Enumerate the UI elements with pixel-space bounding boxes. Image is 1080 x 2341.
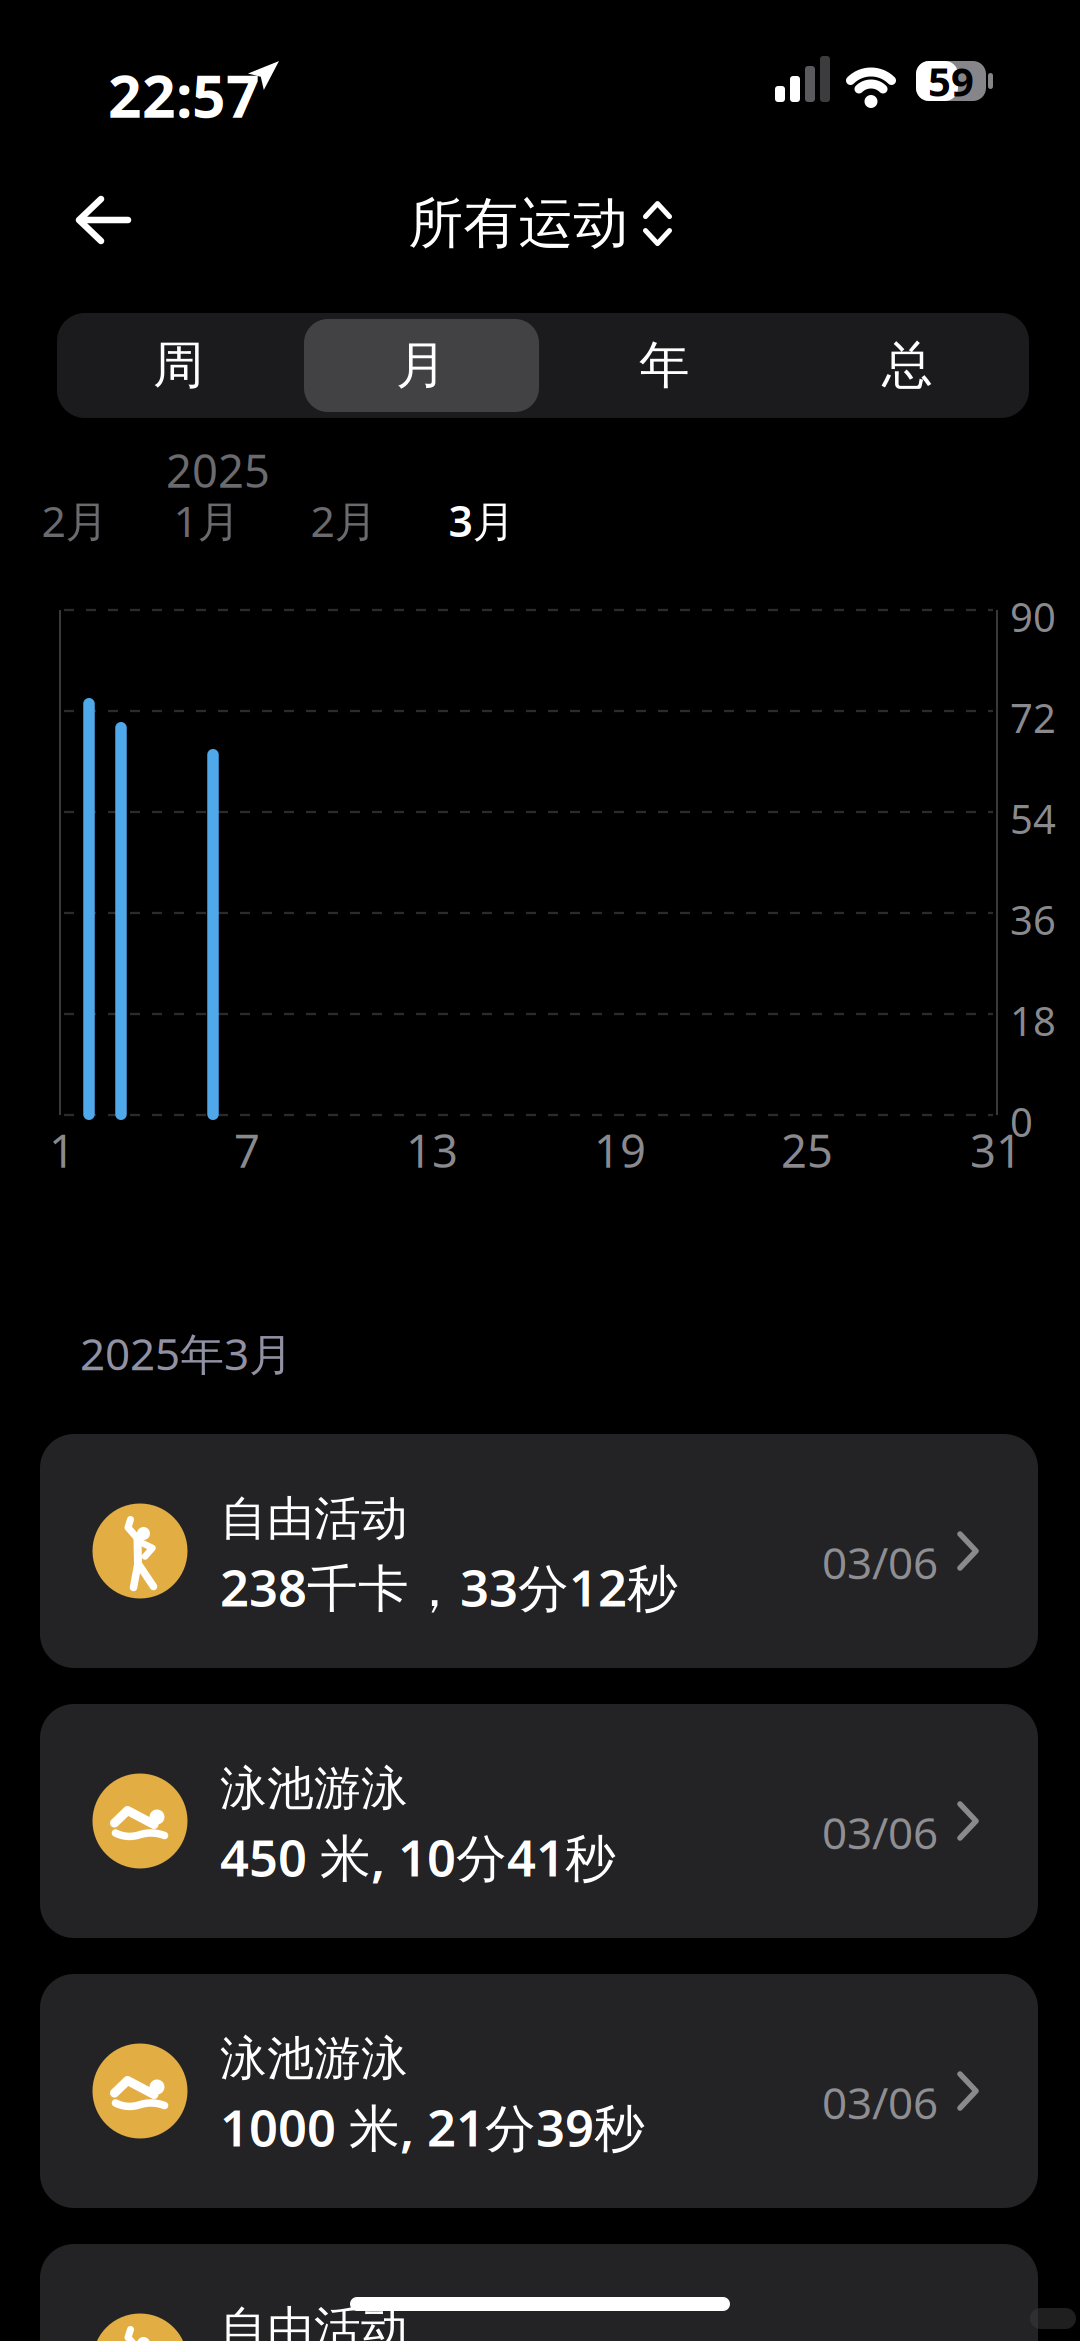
- staticText: 月: [396, 334, 447, 397]
- staticText: 03/06: [822, 2073, 938, 2131]
- staticText: 1000 米, 21分39秒: [220, 2093, 645, 2161]
- button[interactable]: 自由活动: [40, 1434, 1038, 1668]
- staticText: 周: [153, 334, 204, 397]
- staticText: 36: [1010, 893, 1056, 946]
- button[interactable]: 2月: [274, 492, 414, 549]
- staticText: 1: [49, 1120, 75, 1180]
- staticText: 泳池游泳: [220, 2030, 408, 2087]
- staticText: 所有运动: [408, 190, 628, 257]
- staticText: 0: [1010, 1095, 1033, 1148]
- button[interactable]: 总: [786, 313, 1029, 418]
- staticText: 72: [1010, 691, 1056, 744]
- button[interactable]: 3月: [412, 492, 552, 549]
- staticText: 18: [1010, 994, 1056, 1047]
- staticText: 25: [781, 1120, 833, 1180]
- staticText: 2月: [310, 492, 377, 549]
- button[interactable]: 月: [300, 313, 543, 418]
- button[interactable]: 1月: [137, 492, 277, 549]
- staticText: 年: [639, 334, 690, 397]
- button[interactable]: 年: [543, 313, 786, 418]
- staticText: 59: [928, 54, 974, 107]
- staticText: 总: [882, 334, 933, 397]
- button[interactable]: 2月: [5, 492, 145, 549]
- button[interactable]: 自由活动: [40, 2244, 1038, 2341]
- staticText: 13: [406, 1120, 458, 1180]
- staticText: 1月: [173, 492, 240, 549]
- staticText: 238千卡，33分12秒: [220, 1553, 678, 1621]
- staticText: 自由活动: [220, 2300, 408, 2341]
- staticText: 2025年3月: [80, 1324, 293, 1382]
- staticText: 03/06: [822, 1533, 938, 1591]
- button[interactable]: Back: [76, 197, 131, 243]
- button[interactable]: 周: [57, 313, 300, 418]
- staticText: 2月: [41, 492, 108, 549]
- staticText: 03/06: [822, 1803, 938, 1861]
- button[interactable]: 所有运动: [408, 190, 671, 257]
- staticText: 450 米, 10分41秒: [220, 1823, 616, 1891]
- staticText: 31: [970, 1120, 1022, 1180]
- button[interactable]: 泳池游泳: [40, 1974, 1038, 2208]
- staticText: 2025: [166, 440, 270, 500]
- staticText: 3月: [448, 492, 515, 549]
- staticText: 22:57: [108, 56, 260, 134]
- staticText: 90: [1010, 590, 1056, 643]
- staticText: 54: [1010, 792, 1056, 845]
- staticText: 7: [234, 1120, 260, 1180]
- button[interactable]: 泳池游泳: [40, 1704, 1038, 1938]
- staticText: 泳池游泳: [220, 1760, 408, 1817]
- staticText: 自由活动: [220, 1490, 408, 1547]
- staticText: 19: [594, 1120, 646, 1180]
